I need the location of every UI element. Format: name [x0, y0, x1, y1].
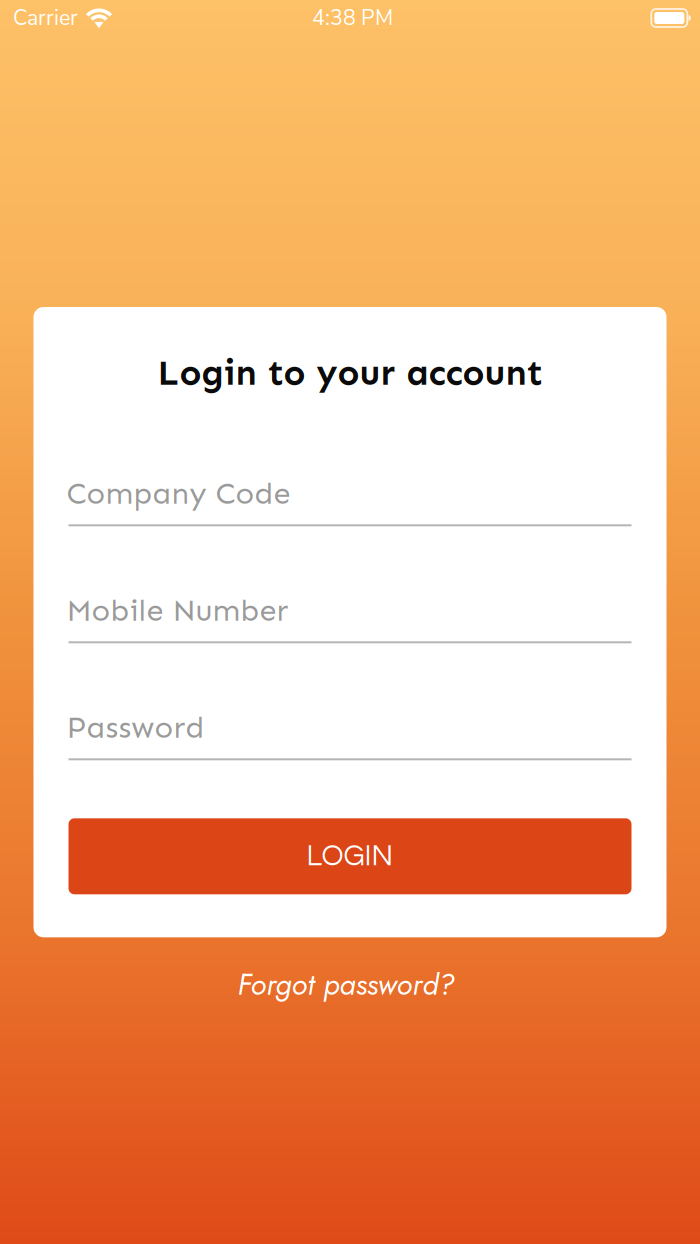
- staticText: Password: [66, 709, 204, 746]
- button[interactable]: Mobile Number: [68, 589, 631, 643]
- button[interactable]: Password: [68, 706, 631, 760]
- staticText: Carrier: [13, 3, 78, 33]
- staticText: Company Code: [66, 475, 290, 512]
- staticText: Mobile Number: [66, 592, 288, 629]
- staticText: LOGIN: [306, 841, 393, 871]
- staticText: 4:38 PM: [312, 3, 393, 33]
- button[interactable]: LOGIN: [68, 818, 631, 894]
- staticText: Login to your account: [157, 351, 542, 394]
- button[interactable]: Forgot password?: [227, 957, 472, 1012]
- button[interactable]: Company Code: [68, 472, 631, 526]
- staticText: Forgot password?: [237, 963, 454, 1006]
